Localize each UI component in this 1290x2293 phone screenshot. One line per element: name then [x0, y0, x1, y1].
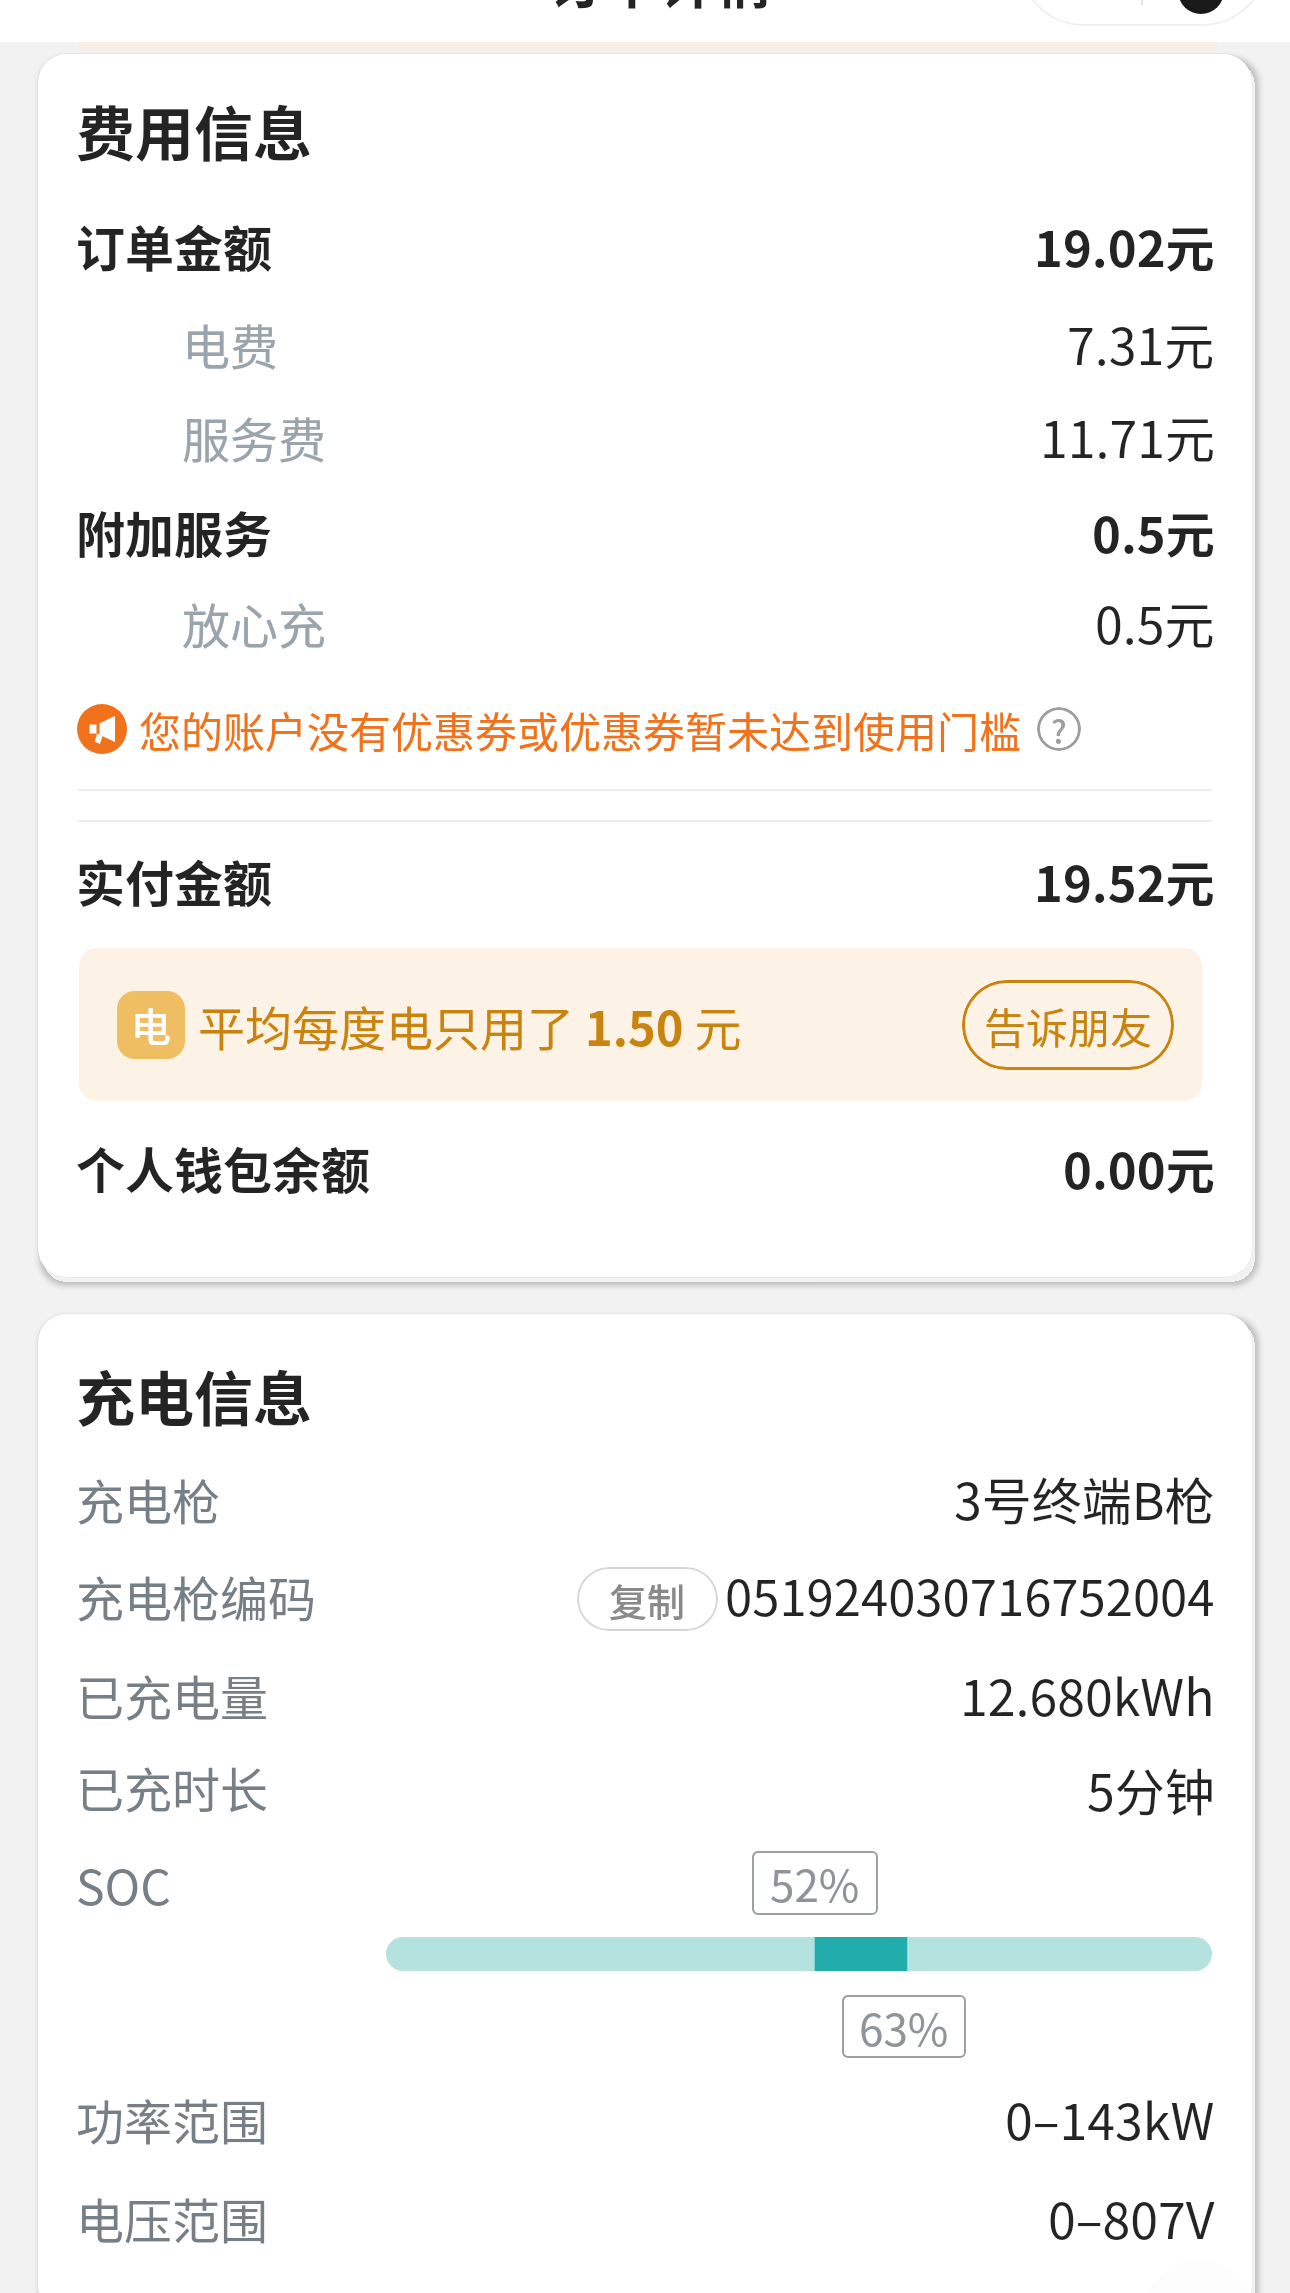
staticText: 0.5元: [1095, 586, 1215, 658]
staticText: ?: [1051, 707, 1067, 751]
staticText: 电费: [182, 309, 279, 379]
staticText: 实付金额: [76, 845, 273, 916]
staticText: 63%: [859, 1995, 949, 2058]
staticText: 5分钟: [1087, 1753, 1215, 1825]
staticText: 充电枪编码: [76, 1561, 317, 1631]
staticText: 您的账户没有优惠券或优惠券暂未达到使用门槛: [139, 699, 1022, 760]
staticText: 告诉朋友: [984, 995, 1153, 1056]
staticText: 功率范围: [76, 2084, 269, 2154]
staticText: 0.00元: [1063, 1132, 1215, 1203]
staticText: 元: [684, 991, 742, 1059]
button[interactable]: 告诉朋友: [962, 980, 1174, 1070]
staticText: 订单金额: [76, 210, 273, 281]
staticText: 0–807V: [1048, 2181, 1215, 2253]
staticText: 服务费: [182, 402, 327, 472]
button[interactable]: 更多: [1018, 0, 1268, 26]
staticText: 19.02元: [1034, 210, 1215, 281]
staticText: 充电信息: [76, 1353, 313, 1438]
staticText: 3号终端B枪: [954, 1462, 1215, 1534]
button[interactable]: 您的账户没有优惠券或优惠券暂未达到使用门槛: [77, 686, 1081, 772]
staticText: 平均每度电只用了: [198, 991, 585, 1059]
staticText: 已充时长: [76, 1752, 269, 1822]
staticText: 订单详情: [548, 0, 772, 19]
staticText: 19.52元: [1034, 845, 1215, 916]
staticText: 充电枪: [76, 1464, 221, 1534]
staticText: 复制: [609, 1572, 686, 1627]
staticText: 电压范围: [76, 2183, 269, 2253]
staticText: 1.50: [585, 991, 684, 1059]
other: 说明: [1037, 707, 1081, 751]
staticText: SOC: [76, 1849, 171, 1919]
staticText: 0.5元: [1092, 496, 1215, 567]
staticText: 个人钱包余额: [76, 1132, 371, 1203]
button[interactable]: 复制: [577, 1567, 718, 1631]
staticText: 电: [131, 996, 171, 1054]
staticText: 费用信息: [76, 88, 313, 173]
staticText: 051924030716752004: [725, 1559, 1215, 1630]
staticText: 52%: [770, 1851, 860, 1915]
staticText: 12.680kWh: [960, 1658, 1215, 1730]
staticText: 0–143kW: [1005, 2082, 1215, 2154]
staticText: 放心充: [182, 588, 327, 658]
staticText: 附加服务: [76, 496, 273, 567]
staticText: 11.71元: [1040, 400, 1215, 472]
staticText: 已充电量: [76, 1660, 269, 1730]
staticText: 7.31元: [1067, 307, 1215, 379]
